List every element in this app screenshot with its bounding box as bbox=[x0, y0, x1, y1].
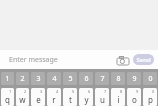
staticText: 5 bbox=[72, 89, 75, 94]
button[interactable]: 7 bbox=[95, 88, 109, 106]
staticText: Enter message bbox=[9, 55, 58, 65]
staticText: p bbox=[148, 94, 153, 105]
staticText: 3 bbox=[40, 89, 43, 94]
staticText: w bbox=[19, 94, 26, 105]
button[interactable]: 1 bbox=[1, 88, 14, 106]
button[interactable]: 5 bbox=[63, 88, 77, 106]
staticText: e bbox=[36, 94, 41, 105]
staticText: i bbox=[117, 94, 120, 105]
button[interactable]: 1 bbox=[1, 72, 14, 85]
staticText: 4 bbox=[56, 89, 59, 94]
button[interactable]: 3 bbox=[31, 88, 45, 106]
staticText: 2 bbox=[24, 89, 27, 94]
button[interactable]: 4 bbox=[47, 72, 61, 85]
staticText: 6 bbox=[84, 74, 89, 84]
staticText: 9 bbox=[132, 74, 137, 84]
staticText: 6 bbox=[88, 89, 91, 94]
button[interactable]: 3 bbox=[31, 72, 45, 85]
button[interactable]: 4 bbox=[47, 88, 61, 106]
staticText: 8 bbox=[120, 89, 123, 94]
staticText: 7 bbox=[100, 74, 105, 84]
staticText: y bbox=[84, 94, 89, 105]
button[interactable]: 9 bbox=[127, 88, 141, 106]
staticText: 5 bbox=[68, 74, 73, 84]
button[interactable]: 0 bbox=[143, 88, 157, 106]
button[interactable]: Send bbox=[133, 54, 154, 65]
button[interactable]: 7 bbox=[95, 72, 109, 85]
button[interactable]: 0 bbox=[143, 72, 157, 85]
staticText: Send bbox=[136, 56, 151, 64]
button[interactable]: 8 bbox=[111, 88, 125, 106]
staticText: t bbox=[69, 94, 72, 105]
button[interactable]: 2 bbox=[16, 88, 29, 106]
staticText: r bbox=[52, 94, 56, 105]
staticText: 1 bbox=[9, 89, 12, 94]
staticText: 7 bbox=[104, 89, 107, 94]
button[interactable]: 6 bbox=[79, 88, 93, 106]
staticText: q bbox=[5, 94, 10, 105]
staticText: o bbox=[132, 94, 137, 105]
button[interactable]: 6 bbox=[79, 72, 93, 85]
staticText: 8 bbox=[116, 74, 121, 84]
button[interactable]: Attach photo bbox=[115, 52, 131, 68]
button[interactable]: 8 bbox=[111, 72, 125, 85]
staticText: 9 bbox=[136, 89, 139, 94]
button[interactable]: 9 bbox=[127, 72, 141, 85]
staticText: 0 bbox=[148, 74, 153, 84]
button[interactable]: Enter message bbox=[4, 50, 115, 69]
staticText: 3 bbox=[36, 74, 41, 84]
staticText: 2 bbox=[20, 74, 25, 84]
button[interactable]: 2 bbox=[16, 72, 29, 85]
staticText: 4 bbox=[52, 74, 57, 84]
staticText: u bbox=[100, 94, 105, 105]
staticText: 0 bbox=[152, 89, 155, 94]
button[interactable]: 5 bbox=[63, 72, 77, 85]
staticText: 1 bbox=[5, 74, 10, 84]
